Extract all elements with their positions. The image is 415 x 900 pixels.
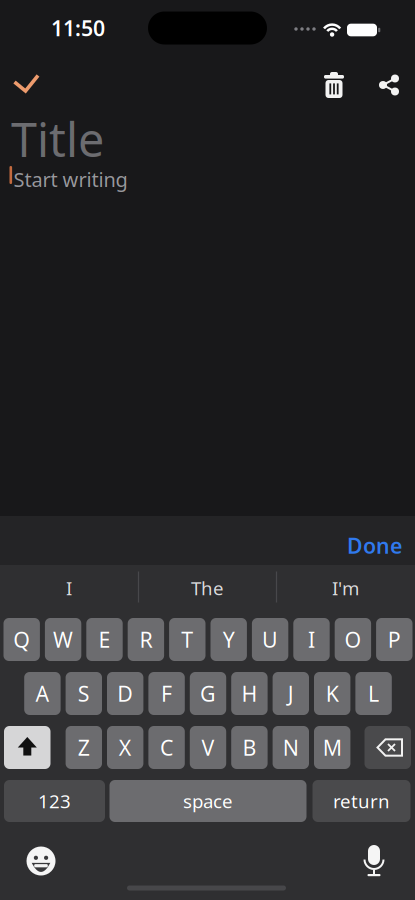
button[interactable]: space bbox=[109, 780, 306, 822]
staticText: P bbox=[388, 625, 401, 654]
button[interactable]: D bbox=[107, 672, 143, 715]
staticText: H bbox=[241, 679, 257, 708]
button[interactable]: Z bbox=[66, 726, 102, 769]
button[interactable]: Done bbox=[337, 531, 412, 560]
staticText: Title bbox=[11, 108, 104, 170]
staticText: Y bbox=[223, 625, 235, 654]
staticText: G bbox=[200, 679, 216, 708]
staticText: 123 bbox=[38, 789, 71, 813]
button[interactable]: N bbox=[273, 726, 309, 769]
button[interactable]: I bbox=[293, 618, 330, 661]
staticText: J bbox=[288, 679, 294, 708]
button[interactable]: return bbox=[312, 780, 410, 822]
staticText: Q bbox=[13, 625, 30, 654]
staticText: 11:50 bbox=[51, 14, 105, 42]
button[interactable]: I'm bbox=[280, 566, 410, 610]
button[interactable]: X bbox=[107, 726, 143, 769]
button[interactable]: Shift bbox=[4, 726, 50, 769]
staticText: B bbox=[242, 733, 256, 762]
staticText: Start writing bbox=[13, 166, 127, 193]
button[interactable]: I bbox=[4, 566, 134, 610]
staticText: space bbox=[183, 789, 233, 813]
staticText: S bbox=[78, 679, 90, 708]
button[interactable]: C bbox=[148, 726, 185, 769]
staticText: I bbox=[66, 576, 72, 600]
button[interactable]: Delete bbox=[364, 726, 411, 769]
staticText: I bbox=[308, 625, 315, 654]
button[interactable]: W bbox=[45, 618, 81, 661]
button[interactable]: The bbox=[142, 566, 272, 610]
staticText: D bbox=[117, 679, 133, 708]
button[interactable]: Share bbox=[374, 70, 404, 100]
staticText: K bbox=[326, 679, 339, 708]
staticText: T bbox=[181, 625, 193, 654]
staticText: The bbox=[191, 576, 224, 600]
button[interactable]: G bbox=[190, 672, 226, 715]
staticText: I'm bbox=[332, 576, 359, 600]
staticText: C bbox=[160, 733, 173, 762]
staticText: N bbox=[283, 733, 299, 762]
staticText: R bbox=[139, 625, 152, 654]
button[interactable]: Delete bbox=[314, 66, 354, 106]
button[interactable]: J bbox=[273, 672, 309, 715]
button[interactable]: O bbox=[335, 618, 371, 661]
button[interactable]: M bbox=[314, 726, 350, 769]
button[interactable]: H bbox=[231, 672, 268, 715]
button[interactable]: P bbox=[376, 618, 412, 661]
button[interactable]: U bbox=[252, 618, 288, 661]
button[interactable]: B bbox=[231, 726, 268, 769]
staticText: F bbox=[161, 679, 172, 708]
button[interactable]: Q bbox=[3, 618, 40, 661]
button[interactable]: A bbox=[24, 672, 61, 715]
button[interactable]: Dictation bbox=[360, 845, 388, 879]
button[interactable]: 123 bbox=[4, 780, 105, 822]
button[interactable]: F bbox=[148, 672, 185, 715]
button[interactable]: L bbox=[355, 672, 392, 715]
button[interactable]: R bbox=[128, 618, 164, 661]
staticText: Z bbox=[78, 733, 90, 762]
staticText: Done bbox=[347, 531, 402, 560]
button[interactable]: T bbox=[169, 618, 205, 661]
staticText: U bbox=[262, 625, 278, 654]
staticText: E bbox=[98, 625, 110, 654]
staticText: V bbox=[201, 733, 214, 762]
staticText: A bbox=[35, 679, 49, 708]
staticText: return bbox=[333, 789, 390, 813]
staticText: L bbox=[368, 679, 379, 708]
staticText: O bbox=[344, 625, 361, 654]
button[interactable]: E bbox=[86, 618, 123, 661]
staticText: X bbox=[119, 733, 132, 762]
staticText: M bbox=[323, 733, 342, 762]
button[interactable]: S bbox=[66, 672, 102, 715]
staticText: W bbox=[53, 625, 73, 654]
button[interactable]: Y bbox=[210, 618, 247, 661]
button[interactable]: Emoji bbox=[26, 846, 55, 875]
button[interactable]: V bbox=[190, 726, 226, 769]
button[interactable]: Save bbox=[4, 65, 48, 101]
button[interactable]: K bbox=[314, 672, 350, 715]
